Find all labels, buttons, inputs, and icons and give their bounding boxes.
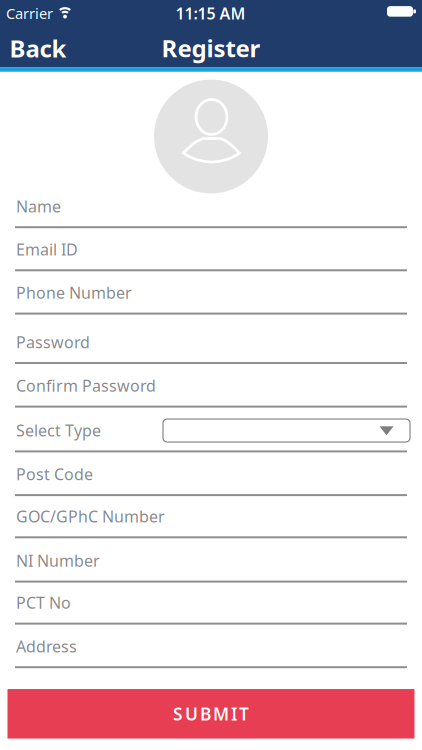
staticText: Password [16, 331, 90, 353]
staticText: Email ID [16, 239, 78, 260]
staticText: Post Code [16, 463, 93, 485]
staticText: Address [16, 636, 77, 657]
button[interactable]: Back [9, 30, 85, 66]
staticText: SUBMIT [173, 702, 249, 725]
staticText: Select Type [16, 420, 101, 441]
staticText: Back [9, 32, 66, 64]
staticText: Confirm Password [16, 375, 156, 396]
staticText: Carrier [6, 4, 53, 23]
staticText: Name [16, 196, 61, 217]
staticText: Register [161, 32, 260, 64]
staticText: NI Number [16, 550, 100, 571]
staticText: Phone Number [16, 282, 132, 303]
staticText: PCT No [16, 592, 71, 613]
button[interactable]: SUBMIT [7, 689, 414, 738]
staticText: 11:15 AM [175, 3, 245, 24]
staticText: GOC/GPhC Number [16, 506, 165, 527]
button[interactable]: Select Type [163, 419, 410, 442]
